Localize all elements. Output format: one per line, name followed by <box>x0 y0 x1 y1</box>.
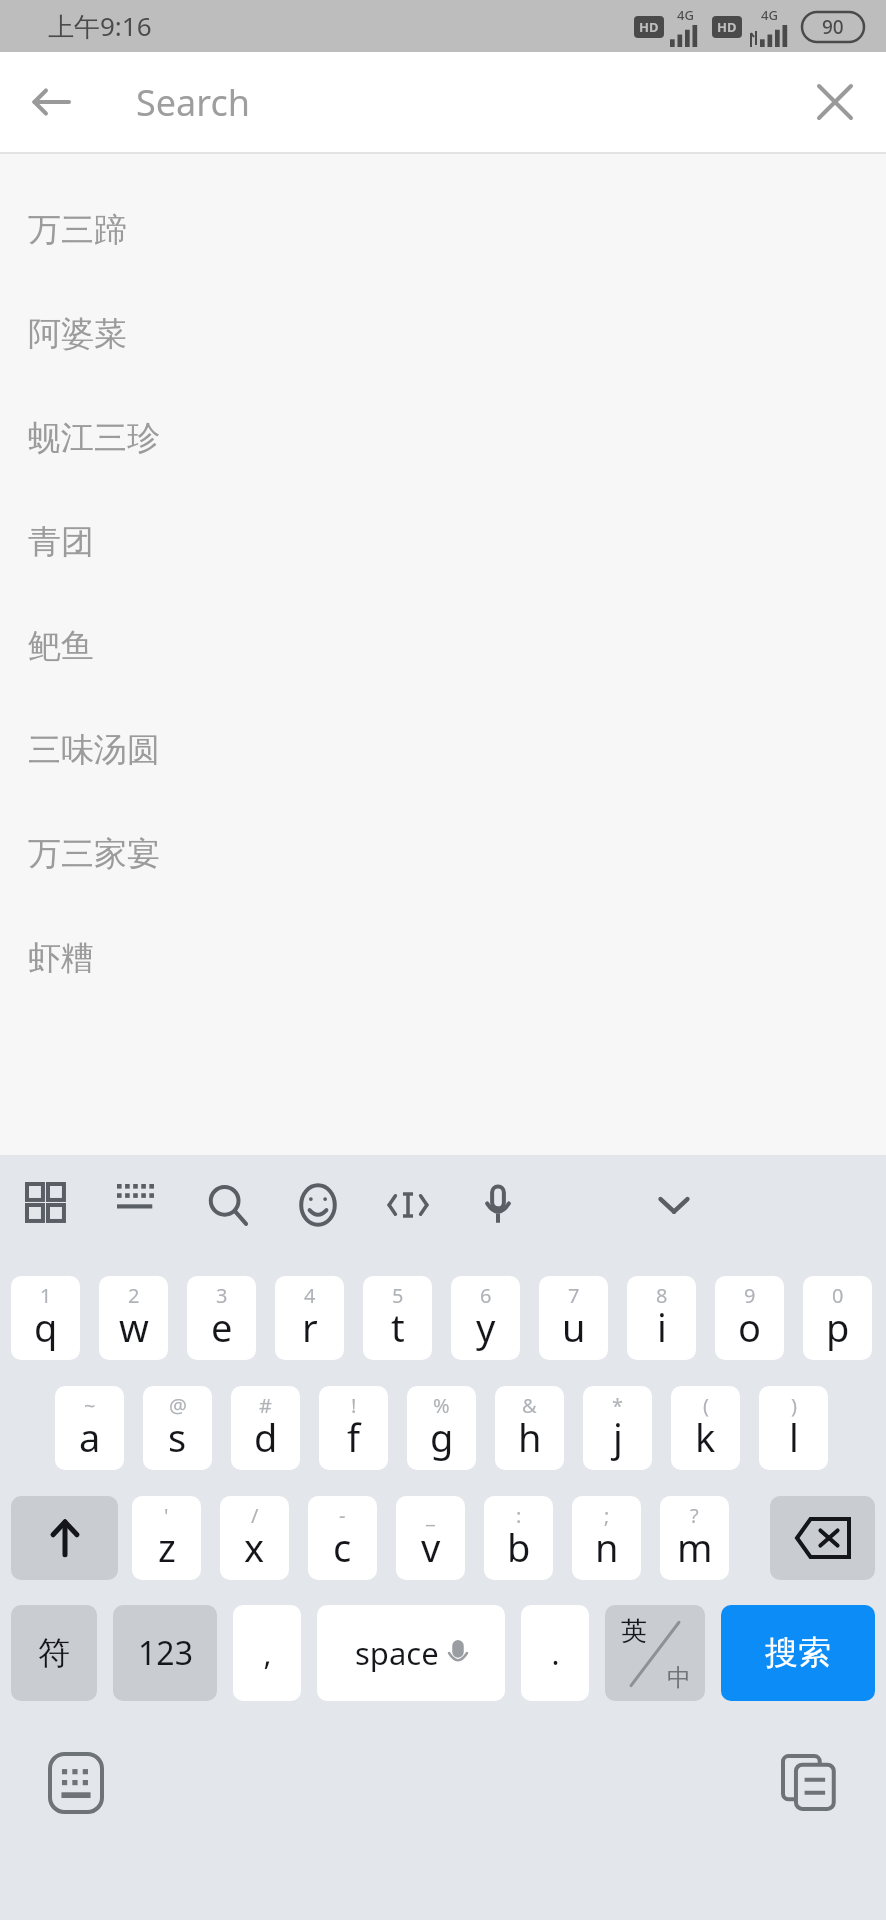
staticText: ~ <box>84 1392 96 1419</box>
staticText: 3 <box>216 1282 228 1309</box>
button[interactable]: Space <box>317 1605 505 1701</box>
button[interactable]: , <box>233 1605 301 1701</box>
staticText: 123 <box>138 1631 193 1675</box>
staticText: h <box>518 1411 542 1463</box>
button[interactable]: 2 <box>99 1276 168 1360</box>
staticText: ' <box>164 1502 169 1529</box>
staticText: p <box>826 1301 850 1353</box>
staticText: 万三蹄 <box>28 209 127 251</box>
button[interactable]: . <box>521 1605 589 1701</box>
button[interactable]: - <box>308 1496 377 1580</box>
button[interactable]: Toolbox <box>14 1171 82 1239</box>
button[interactable]: Switch language <box>605 1605 705 1701</box>
staticText: x <box>244 1521 265 1573</box>
button[interactable]: % <box>407 1386 476 1470</box>
button[interactable]: Search <box>194 1171 262 1239</box>
staticText: 9 <box>744 1282 756 1309</box>
staticText: % <box>433 1392 450 1419</box>
button[interactable]: ; <box>572 1496 641 1580</box>
staticText: i <box>657 1301 667 1353</box>
staticText: g <box>430 1411 454 1463</box>
button[interactable]: 搜索 <box>721 1605 875 1701</box>
button[interactable]: 虾糟 <box>0 906 886 1010</box>
staticText: o <box>738 1301 761 1353</box>
staticText: 阿婆菜 <box>28 313 127 355</box>
button[interactable]: 3 <box>187 1276 256 1360</box>
button[interactable]: 4 <box>275 1276 344 1360</box>
button[interactable]: Switch keyboard <box>38 1745 114 1821</box>
staticText: f <box>347 1411 361 1463</box>
staticText: 上午9:16 <box>48 8 152 44</box>
staticText: l <box>789 1411 799 1463</box>
staticText: v <box>421 1521 441 1573</box>
button[interactable]: 8 <box>627 1276 696 1360</box>
button[interactable]: 万三家宴 <box>0 802 886 906</box>
button[interactable]: ~ <box>55 1386 124 1470</box>
staticText: w <box>119 1301 149 1353</box>
button[interactable]: ! <box>319 1386 388 1470</box>
staticText: b <box>507 1521 531 1573</box>
staticText: HD <box>639 18 659 36</box>
button[interactable]: 9 <box>715 1276 784 1360</box>
button[interactable]: ? <box>660 1496 729 1580</box>
button[interactable]: 万三蹄 <box>0 178 886 282</box>
button[interactable]: 阿婆菜 <box>0 282 886 386</box>
button[interactable]: Voice input <box>464 1171 532 1239</box>
button[interactable]: 符 <box>11 1605 97 1701</box>
button[interactable]: Backspace <box>770 1496 875 1580</box>
staticText: k <box>695 1411 716 1463</box>
staticText: 三味汤圆 <box>28 729 160 771</box>
button[interactable]: Keyboard layout <box>104 1171 172 1239</box>
staticText: ! <box>351 1392 357 1419</box>
staticText: 万三家宴 <box>28 833 160 875</box>
button[interactable]: Clear <box>798 65 872 139</box>
staticText: 4G <box>761 6 778 24</box>
button[interactable]: 5 <box>363 1276 432 1360</box>
staticText: 6 <box>480 1282 492 1309</box>
staticText: space <box>355 1632 439 1674</box>
button[interactable]: & <box>495 1386 564 1470</box>
staticText: ; <box>604 1502 610 1529</box>
staticText: ) <box>791 1392 797 1419</box>
staticText: c <box>333 1521 352 1573</box>
staticText: Search <box>136 78 250 127</box>
button[interactable]: 123 <box>113 1605 217 1701</box>
button[interactable]: Back <box>12 63 90 141</box>
button[interactable]: 6 <box>451 1276 520 1360</box>
staticText: 5 <box>392 1282 404 1309</box>
staticText: z <box>158 1521 176 1573</box>
staticText: 英 <box>621 1615 647 1648</box>
staticText: j <box>613 1411 623 1463</box>
button[interactable]: _ <box>396 1496 465 1580</box>
button[interactable]: Hide keyboard <box>640 1171 708 1239</box>
button[interactable]: 青团 <box>0 490 886 594</box>
button[interactable]: 蚬江三珍 <box>0 386 886 490</box>
button[interactable]: 7 <box>539 1276 608 1360</box>
staticText: r <box>302 1301 318 1353</box>
staticText: 鲃鱼 <box>28 625 94 667</box>
button[interactable]: / <box>220 1496 289 1580</box>
button[interactable]: 鲃鱼 <box>0 594 886 698</box>
button[interactable]: 三味汤圆 <box>0 698 886 802</box>
button[interactable]: ' <box>132 1496 201 1580</box>
button[interactable]: @ <box>143 1386 212 1470</box>
button[interactable]: 0 <box>803 1276 872 1360</box>
button[interactable]: ( <box>671 1386 740 1470</box>
staticText: 中 <box>667 1663 691 1693</box>
staticText: # <box>259 1392 272 1419</box>
staticText: d <box>254 1411 278 1463</box>
staticText: e <box>211 1301 233 1353</box>
button[interactable]: 1 <box>11 1276 80 1360</box>
button[interactable]: Emoji <box>284 1171 352 1239</box>
button[interactable]: : <box>484 1496 553 1580</box>
button[interactable]: ) <box>759 1386 828 1470</box>
button[interactable]: Edit text <box>374 1171 442 1239</box>
button[interactable]: # <box>231 1386 300 1470</box>
button[interactable]: Shift <box>11 1496 118 1580</box>
button[interactable]: * <box>583 1386 652 1470</box>
staticText: 2 <box>128 1282 140 1309</box>
button[interactable]: Clipboard <box>772 1745 848 1821</box>
staticText: u <box>562 1301 586 1353</box>
staticText: 0 <box>832 1282 844 1309</box>
staticText: - <box>339 1502 346 1529</box>
